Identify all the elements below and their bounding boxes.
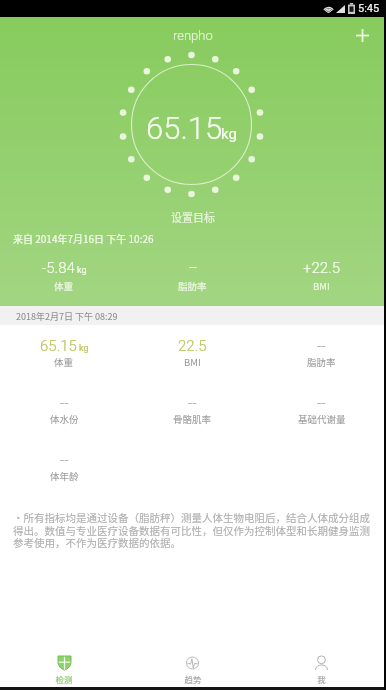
staticText: 65.15	[146, 110, 223, 146]
staticText: kg	[221, 125, 237, 143]
staticText: 脂肪率	[178, 279, 207, 293]
staticText: 体重	[54, 279, 74, 293]
button[interactable]: 设置目标	[157, 207, 229, 227]
staticText: 骨骼肌率	[173, 412, 212, 426]
button[interactable]: --	[0, 394, 128, 426]
button[interactable]: +22.5	[257, 259, 386, 293]
staticText: 5:45	[358, 2, 380, 15]
staticText: ·所有指标均是通过设备（脂肪秤）测量人体生物电阻后，结合人体成分组成得出。数值与…	[13, 510, 371, 550]
button[interactable]: --	[257, 394, 386, 426]
button[interactable]: -5.84	[0, 259, 128, 293]
button[interactable]: 22.5	[128, 337, 257, 369]
staticText: 设置目标	[171, 209, 215, 225]
staticText: BMI	[184, 355, 201, 369]
button[interactable]: 65.15	[0, 337, 128, 369]
button[interactable]: 检测	[0, 648, 128, 690]
staticText: kg	[79, 343, 89, 354]
staticText: –	[188, 259, 198, 277]
button[interactable]: 趋势	[128, 648, 257, 690]
staticText: 22.5	[178, 337, 207, 355]
staticText: -5.84	[42, 259, 75, 277]
staticText: 来自 2014年7月16日 下午 10:26	[13, 231, 154, 245]
staticText: 体水份	[50, 412, 79, 426]
staticText: 体年龄	[50, 469, 79, 483]
button[interactable]: Add measurement	[346, 19, 378, 51]
button[interactable]: --	[0, 451, 128, 483]
staticText: renpho	[173, 28, 213, 43]
staticText: kg	[77, 265, 87, 276]
button[interactable]: --	[128, 394, 257, 426]
staticText: 体重	[54, 355, 74, 369]
staticText: --	[188, 394, 197, 412]
staticText: 基础代谢量	[298, 412, 346, 426]
staticText: +22.5	[303, 259, 341, 277]
staticText: BMI	[313, 279, 330, 293]
staticText: 趋势	[184, 673, 202, 685]
button[interactable]: --	[257, 337, 386, 369]
button[interactable]: –	[128, 259, 257, 293]
staticText: --	[60, 451, 69, 469]
staticText: --	[317, 337, 326, 355]
staticText: 65.15	[40, 337, 77, 355]
staticText: 脂肪率	[307, 355, 336, 369]
button[interactable]: 我	[257, 648, 386, 690]
staticText: 检测	[55, 673, 73, 685]
staticText: 2018年2月7日 下午 08:29	[16, 310, 118, 323]
staticText: --	[317, 394, 326, 412]
staticText: --	[60, 394, 69, 412]
staticText: 我	[317, 673, 326, 685]
